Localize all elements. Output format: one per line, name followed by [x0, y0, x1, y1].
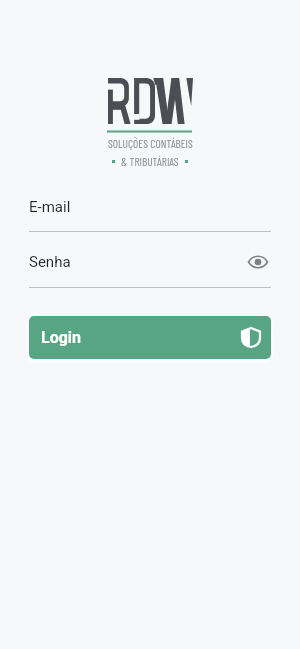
- staticText: Login: [41, 328, 82, 347]
- staticText: E-mail: [29, 198, 71, 216]
- staticText: & TRIBUTÁRIAS: [121, 154, 179, 168]
- staticText: Senha: [29, 253, 71, 271]
- button[interactable]: Login: [29, 316, 271, 359]
- staticText: SOLUÇÕES CONTÁBEIS: [108, 136, 193, 150]
- button[interactable]: Mostrar senha: [245, 249, 271, 275]
